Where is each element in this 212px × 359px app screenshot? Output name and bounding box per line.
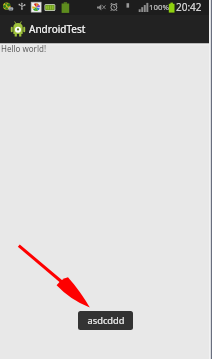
staticText: Hello world! <box>1 43 47 54</box>
staticText: asdcddd <box>87 314 125 327</box>
other: Arrow annotation <box>0 43 212 359</box>
button[interactable]: asdcddd <box>78 311 133 330</box>
staticText: AndroidTest <box>29 22 86 36</box>
staticText: 20:42 <box>176 0 202 14</box>
staticText: 100% <box>149 2 169 13</box>
button[interactable]: AndroidTest <box>0 15 212 43</box>
